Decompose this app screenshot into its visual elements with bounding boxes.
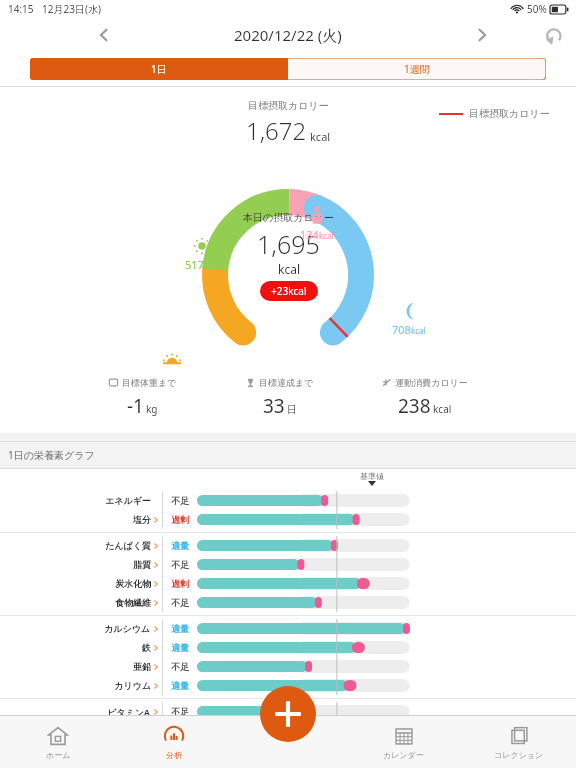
staticText: -1 xyxy=(127,393,144,419)
staticText: 不足 xyxy=(171,661,189,672)
button[interactable]: ビタミンA xyxy=(0,702,160,721)
staticText: 過剰 xyxy=(171,514,189,525)
staticText: 炭水化物 xyxy=(115,578,151,589)
button[interactable]: 1週間 xyxy=(288,58,546,80)
staticText: +23kcal xyxy=(271,284,307,298)
staticText: たんぱく質 xyxy=(105,540,151,551)
button[interactable]: カリウム xyxy=(0,676,160,695)
button[interactable]: 鉄 xyxy=(0,638,160,657)
staticText: 50% xyxy=(527,2,547,16)
staticText: 不足 xyxy=(171,706,189,717)
button[interactable]: 塩分 xyxy=(0,510,160,529)
staticText: 不足 xyxy=(171,597,189,608)
staticText: kcal xyxy=(310,129,331,144)
button[interactable]: 次の日 xyxy=(466,19,498,51)
button[interactable]: 炭水化物 xyxy=(0,574,160,593)
staticText: 1日 xyxy=(151,62,167,76)
staticText: 適量 xyxy=(171,642,189,653)
staticText: 適量 xyxy=(171,540,189,551)
button[interactable]: 追加 xyxy=(260,686,316,742)
staticText: 12月23日(水) xyxy=(42,2,101,16)
staticText: 2020/12/22 (火) xyxy=(234,25,342,45)
staticText: 1,672 xyxy=(246,114,307,147)
staticText: 日 xyxy=(287,403,297,416)
staticText: 134 xyxy=(300,227,319,242)
button[interactable]: 脂質 xyxy=(0,555,160,574)
staticText: ホーム xyxy=(46,750,71,760)
staticText: 目標摂取カロリー xyxy=(469,107,550,120)
staticText: 517 xyxy=(185,257,204,272)
button[interactable]: コレクション xyxy=(461,716,576,768)
button[interactable]: 亜鉛 xyxy=(0,657,160,676)
staticText: 14:15 xyxy=(8,2,34,16)
staticText: 708 xyxy=(392,322,411,337)
staticText: 不足 xyxy=(171,495,189,506)
staticText: 脂質 xyxy=(133,559,151,570)
button[interactable]: カルシウム xyxy=(0,619,160,638)
staticText: カリウム xyxy=(114,680,151,691)
staticText: 33 xyxy=(263,393,285,419)
staticText: 1週間 xyxy=(404,62,430,76)
staticText: kcal xyxy=(204,260,219,271)
staticText: ビタミンA xyxy=(107,706,151,718)
staticText: kcal xyxy=(278,261,300,277)
button[interactable]: +23kcal xyxy=(271,284,307,298)
staticText: 本日の摂取カロリー xyxy=(243,211,334,224)
button[interactable]: たんぱく質 xyxy=(0,536,160,555)
staticText: エネルギー xyxy=(105,495,151,506)
staticText: 適量 xyxy=(171,680,189,691)
staticText: カレンダー xyxy=(383,750,424,760)
staticText: 塩分 xyxy=(133,514,151,525)
staticText: kg xyxy=(146,402,158,416)
staticText: 1,695 xyxy=(257,227,320,261)
staticText: 適量 xyxy=(171,623,189,634)
staticText: kcal xyxy=(433,402,452,416)
staticText: 目標摂取カロリー xyxy=(248,99,329,112)
button[interactable]: カレンダー xyxy=(346,716,461,768)
staticText: 238 xyxy=(398,393,431,419)
staticText: 亜鉛 xyxy=(133,661,151,672)
staticText: 食物繊維 xyxy=(115,597,151,608)
button[interactable]: 1日 xyxy=(30,58,288,80)
staticText: 目標体重まで xyxy=(122,377,177,388)
staticText: 分析 xyxy=(166,750,182,760)
staticText: 運動消費カロリー xyxy=(395,377,468,388)
button[interactable]: リセット xyxy=(538,20,568,50)
staticText: 基準値 xyxy=(360,471,384,481)
staticText: 鉄 xyxy=(142,642,151,653)
staticText: 不足 xyxy=(171,559,189,570)
button[interactable]: 食物繊維 xyxy=(0,593,160,612)
staticText: 過剰 xyxy=(171,578,189,589)
staticText: カルシウム xyxy=(104,623,151,634)
button[interactable]: エネルギー xyxy=(0,491,160,510)
staticText: 目標達成まで xyxy=(259,377,314,388)
staticText: 1日の栄養素グラフ xyxy=(8,448,95,462)
staticText: kcal xyxy=(411,325,426,336)
button[interactable]: 前の日 xyxy=(88,19,120,51)
button[interactable]: ホーム xyxy=(0,716,116,768)
staticText: kcal xyxy=(319,230,334,241)
button[interactable]: 分析 xyxy=(116,716,231,768)
staticText: コレクション xyxy=(494,750,544,760)
